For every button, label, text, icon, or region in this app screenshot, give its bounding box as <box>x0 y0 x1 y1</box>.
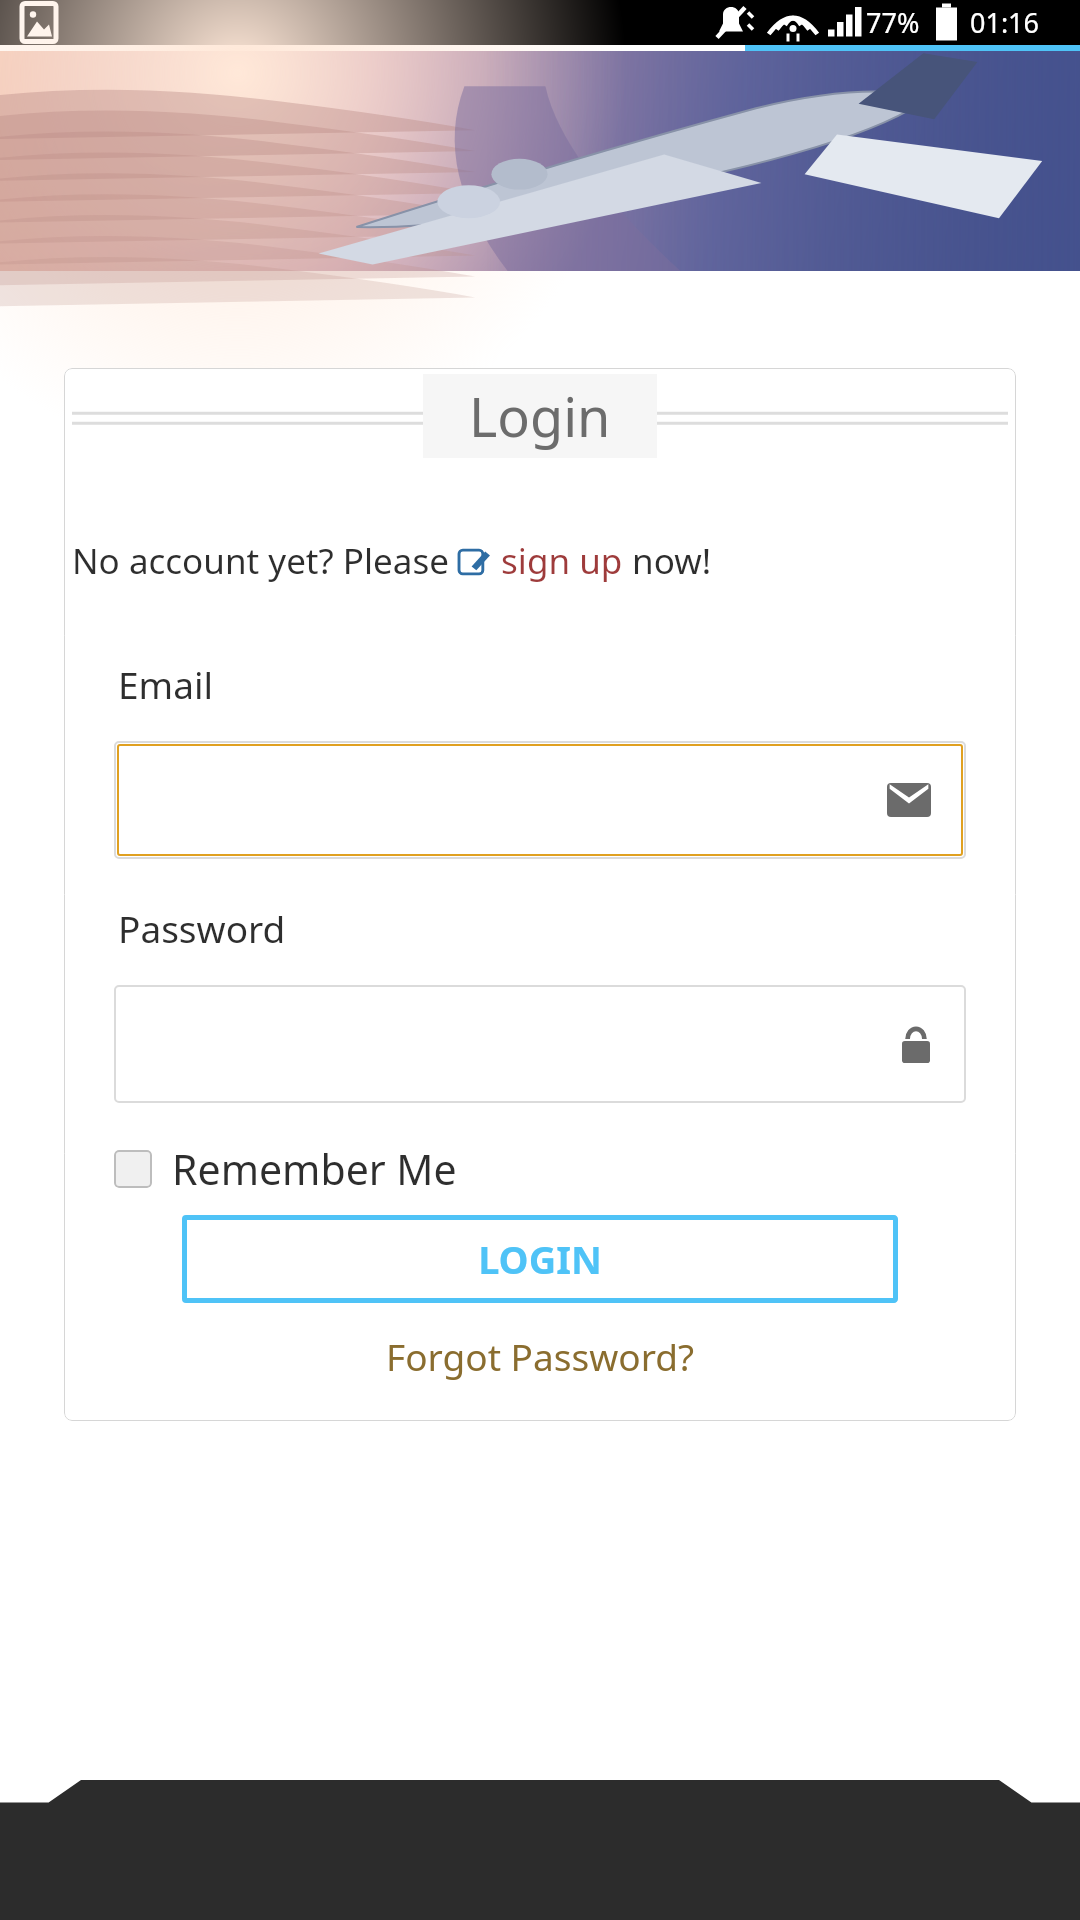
button[interactable]: Forgot Password? <box>376 1325 705 1387</box>
button[interactable]: No account yet? Please <box>72 537 1016 585</box>
staticText: No account yet? Please <box>72 537 458 585</box>
staticText: Email <box>118 659 214 709</box>
staticText: Password <box>118 903 286 953</box>
staticText: 77% <box>866 4 920 41</box>
button[interactable] <box>117 744 963 856</box>
staticText: Forgot Password? <box>386 1331 695 1381</box>
button[interactable]: LOGIN <box>182 1215 898 1303</box>
staticText: Login <box>469 379 611 453</box>
button[interactable]: Remember Me <box>114 1141 457 1197</box>
button[interactable] <box>114 985 966 1103</box>
staticText: Remember Me <box>172 1141 457 1197</box>
other: Sign up <box>458 544 492 578</box>
staticText: now! <box>623 537 712 585</box>
staticText: sign up <box>492 537 623 585</box>
staticText: LOGIN <box>478 1233 602 1285</box>
staticText: 01:16 <box>970 4 1040 41</box>
